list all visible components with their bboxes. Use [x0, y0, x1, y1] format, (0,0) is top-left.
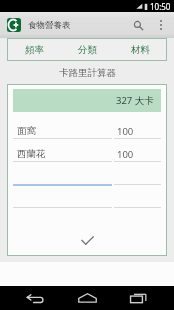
button[interactable]: 頻率	[7, 38, 61, 61]
staticText: 10:50	[150, 1, 171, 12]
staticText: 材料	[131, 44, 150, 56]
button[interactable]: 材料	[114, 38, 167, 61]
staticText: 面窩	[17, 125, 36, 137]
button[interactable]: Confirm	[7, 230, 167, 250]
staticText: 卡路里計算器	[59, 67, 116, 79]
button[interactable]: Search	[126, 13, 150, 37]
staticText: 食物營養表	[28, 20, 71, 31]
button[interactable]: Recents	[113, 286, 165, 310]
button[interactable]: Home	[61, 286, 113, 310]
staticText: 100	[117, 148, 134, 161]
staticText: 分類	[78, 44, 97, 56]
button[interactable]: Back	[9, 286, 61, 310]
staticText: 327 大卡	[116, 94, 154, 107]
staticText: 100	[117, 125, 134, 138]
staticText: 西蘭花	[17, 148, 46, 160]
button[interactable]: More options	[150, 14, 172, 36]
staticText: 頻率	[25, 44, 44, 56]
button[interactable]: 分類	[61, 38, 114, 61]
button[interactable]: App icon	[7, 18, 21, 32]
